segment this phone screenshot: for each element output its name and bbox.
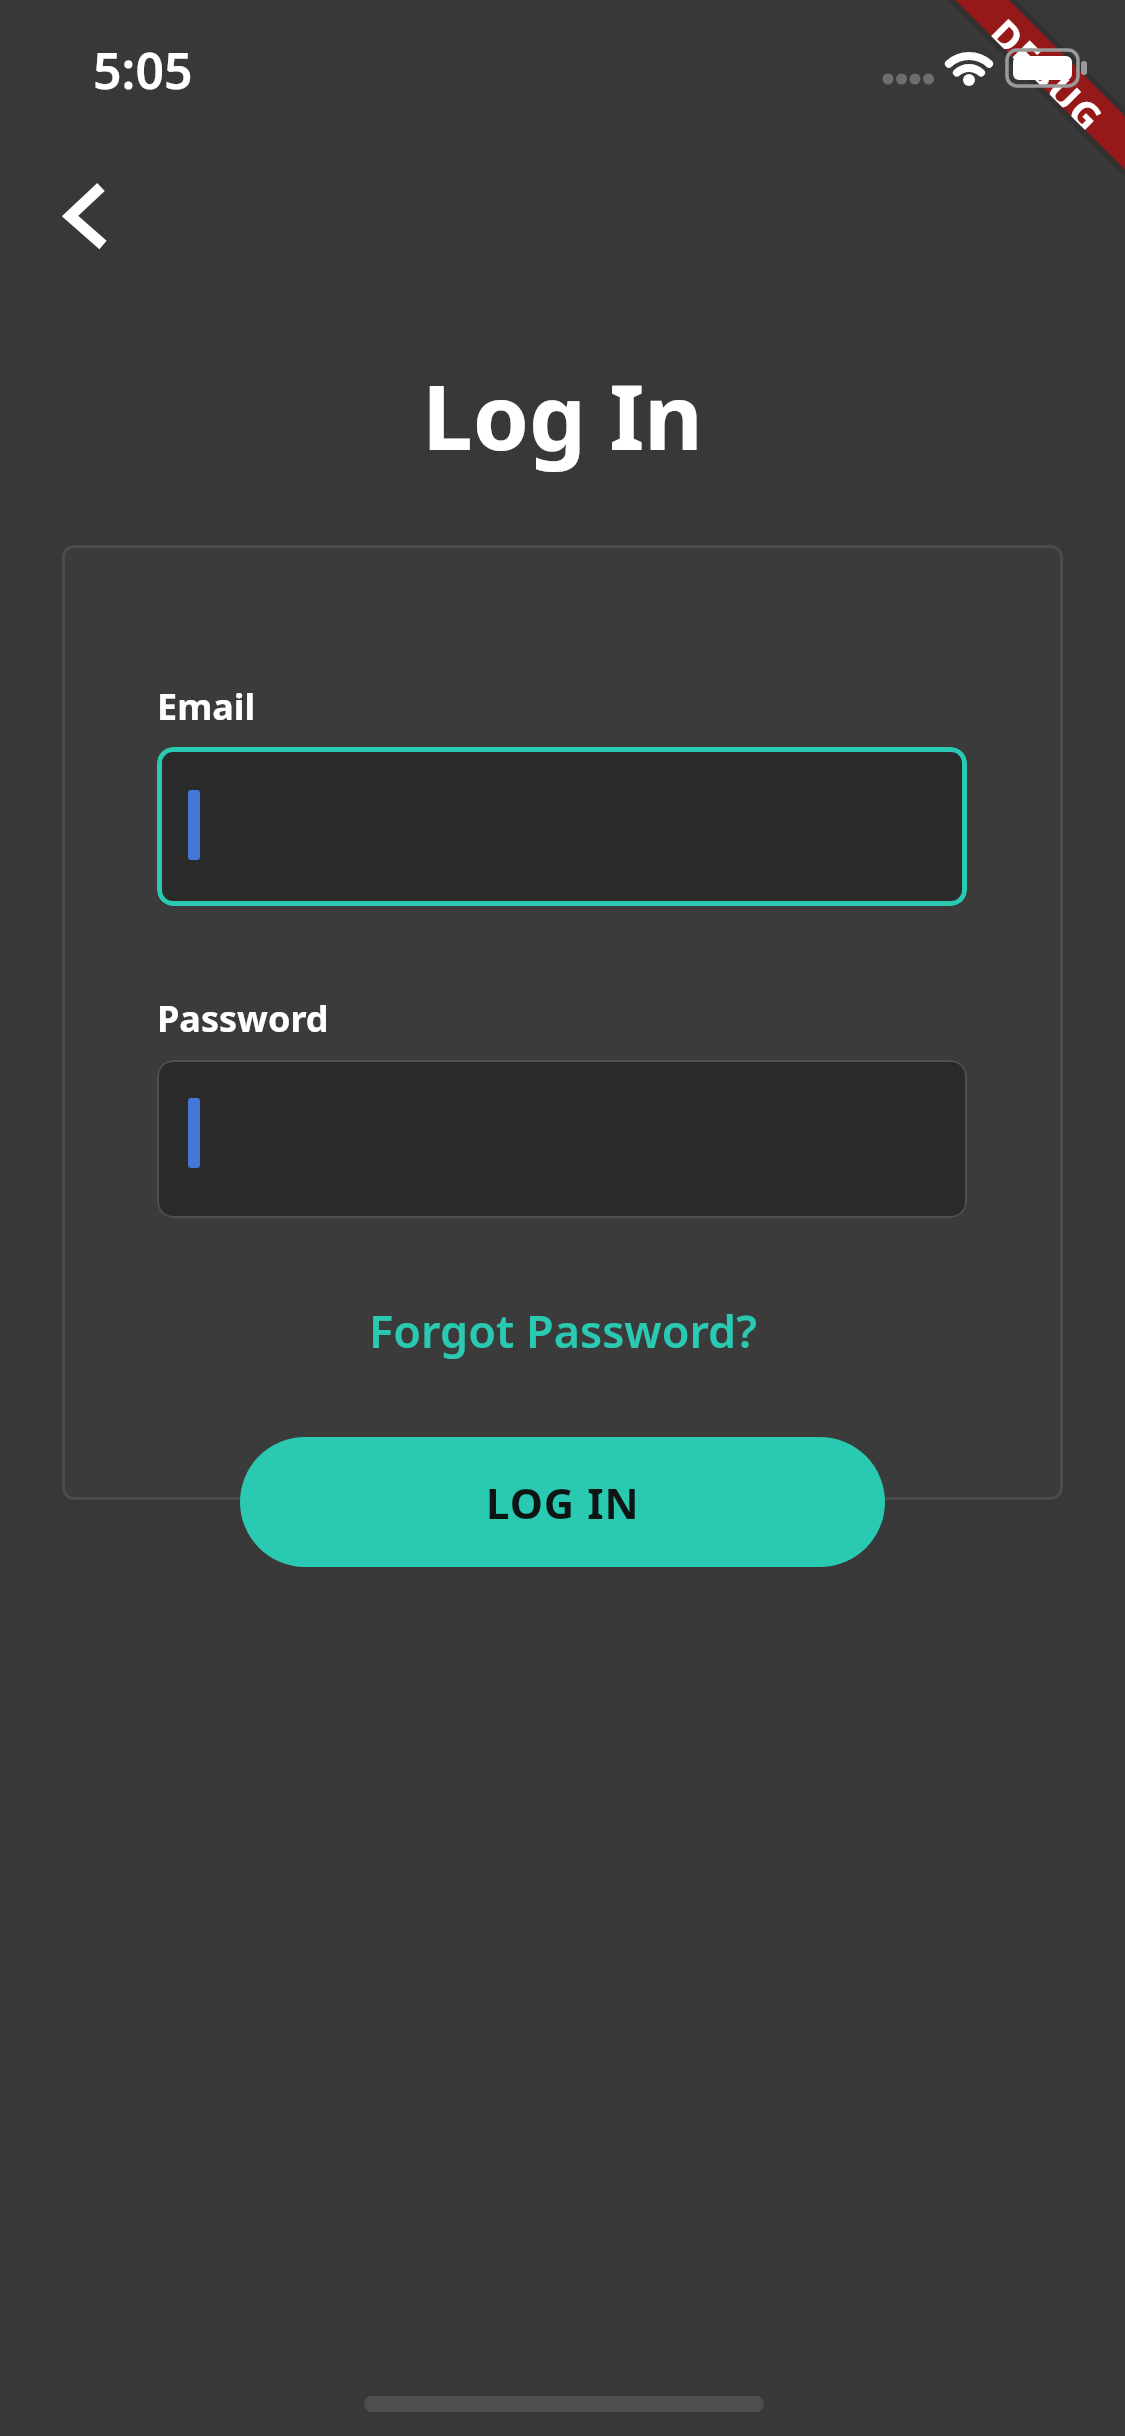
staticText: Log In: [0, 354, 1125, 477]
staticText: LOG IN: [486, 1474, 640, 1531]
staticText: Password: [157, 994, 329, 1043]
button[interactable]: Forgot Password?: [369, 1300, 757, 1361]
staticText: DEBUG: [989, 7, 1116, 134]
button[interactable]: [40, 160, 130, 270]
button[interactable]: [157, 1060, 967, 1218]
button[interactable]: [157, 747, 967, 906]
button[interactable]: LOG IN: [240, 1437, 885, 1567]
staticText: Email: [157, 682, 256, 731]
staticText: 5:05: [93, 36, 193, 104]
